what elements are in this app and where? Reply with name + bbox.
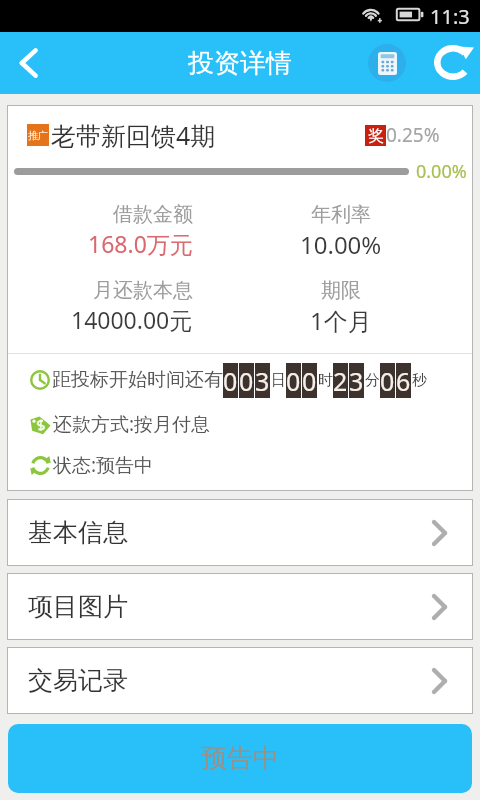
staticText: 0.00% <box>416 159 467 184</box>
staticText: 秒 <box>412 371 427 390</box>
staticText: 0 <box>380 364 395 398</box>
staticText: 还款方式:按月付息 <box>53 411 211 437</box>
staticText: 0 <box>239 364 254 398</box>
staticText: 推广 <box>28 129 48 142</box>
button[interactable]: 交易记录 <box>7 647 473 714</box>
button[interactable]: 基本信息 <box>7 499 473 566</box>
staticText: 0 <box>302 364 317 398</box>
staticText: 10.00% <box>300 228 382 261</box>
staticText: 奖 <box>368 126 384 146</box>
staticText: 基本信息 <box>28 517 128 548</box>
staticText: 投资详情 <box>188 47 292 80</box>
staticText: 6 <box>396 364 411 398</box>
staticText: 借款金额 <box>113 202 193 227</box>
staticText: 0.25% <box>386 122 440 148</box>
button[interactable]: 预告中 <box>8 724 472 793</box>
staticText: 0 <box>286 364 301 398</box>
button[interactable]: Calculator <box>361 33 413 93</box>
staticText: 3 <box>255 364 270 398</box>
staticText: 期限 <box>321 278 361 303</box>
staticText: 月还款本息 <box>93 278 193 303</box>
button[interactable]: Back <box>0 32 56 94</box>
staticText: 2 <box>333 364 348 398</box>
staticText: 项目图片 <box>28 591 128 622</box>
staticText: 老带新回馈4期 <box>51 118 216 152</box>
staticText: 11:36 <box>430 3 480 32</box>
staticText: 日 <box>271 371 286 390</box>
staticText: 分 <box>365 371 380 390</box>
staticText: 3 <box>349 364 364 398</box>
staticText: 时 <box>318 371 333 390</box>
staticText: 距投标开始时间还有 <box>52 368 223 392</box>
staticText: 14000.00元 <box>71 304 193 335</box>
staticText: 1个月 <box>310 304 372 337</box>
staticText: 168.0万元 <box>88 228 193 259</box>
staticText: 0 <box>223 364 238 398</box>
staticText: 年利率 <box>311 202 371 227</box>
button[interactable]: 项目图片 <box>7 573 473 640</box>
staticText: 交易记录 <box>28 665 128 696</box>
staticText: 状态:预告中 <box>53 452 154 478</box>
staticText: 预告中 <box>201 742 279 775</box>
button[interactable]: Refresh <box>427 33 480 93</box>
